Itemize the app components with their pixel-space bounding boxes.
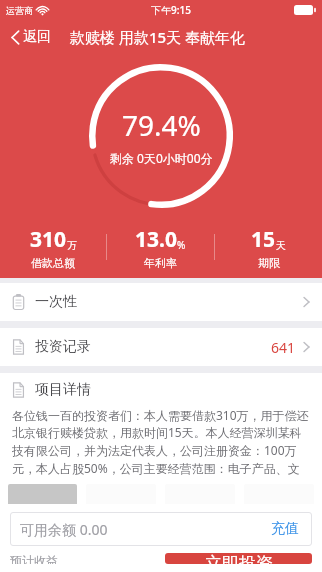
- button[interactable]: 立即投资: [165, 553, 312, 564]
- staticText: 可用余额 0.00: [20, 520, 108, 539]
- staticText: 下午9:15: [151, 3, 191, 17]
- button[interactable]: 充值: [268, 517, 302, 541]
- staticText: 借款总额: [31, 256, 75, 270]
- button[interactable]: 返回: [6, 24, 56, 50]
- staticText: %: [177, 238, 186, 252]
- staticText: 各位钱一百的投资者们：本人需要借款310万，用于偿还北京银行赎楼贷款，用款时间1…: [12, 407, 310, 477]
- button[interactable]: 投资记录: [0, 328, 322, 366]
- button[interactable]: 一次性: [0, 283, 322, 321]
- staticText: 剩余 0天0小时00分: [110, 150, 213, 166]
- staticText: 13.0: [135, 225, 177, 254]
- button[interactable]: 可用余额 0.00: [10, 512, 312, 546]
- staticText: 期限: [258, 256, 280, 270]
- staticText: 项目详情: [35, 381, 91, 399]
- staticText: 641: [271, 338, 296, 357]
- staticText: 运营商: [6, 5, 33, 16]
- staticText: 预计收益: [10, 553, 58, 564]
- staticText: 15: [251, 225, 276, 254]
- staticText: 投资记录: [35, 338, 91, 356]
- staticText: 310: [30, 225, 67, 254]
- staticText: 一次性: [35, 293, 77, 311]
- staticText: 款赎楼 用款15天 奉献年化: [70, 27, 245, 47]
- staticText: 充值: [271, 520, 299, 538]
- staticText: 返回: [23, 28, 51, 46]
- staticText: 年利率: [144, 256, 177, 270]
- staticText: 立即投资: [205, 553, 273, 564]
- staticText: 万: [67, 239, 77, 252]
- staticText: 79.4%: [122, 106, 201, 144]
- staticText: 天: [276, 239, 286, 252]
